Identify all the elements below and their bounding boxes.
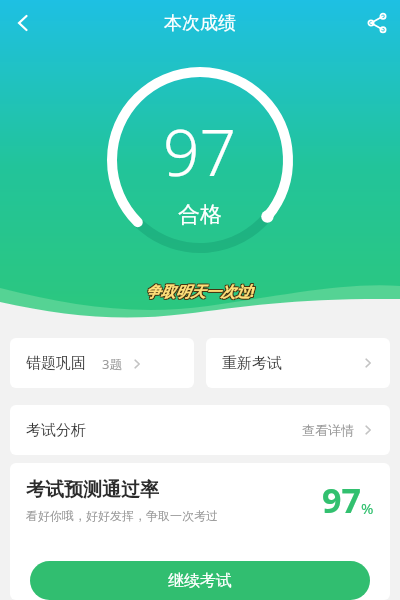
staticText: 考试分析 [26,421,86,440]
button[interactable]: 重新考试 [206,338,390,388]
staticText: 争取明天一次过! [146,282,256,302]
staticText: 97 [322,477,361,523]
staticText: % [361,498,374,518]
staticText: 合格 [178,201,222,229]
staticText: 争取明天一次过! [146,281,256,301]
staticText: 考试预测通过率 [26,478,159,502]
staticText: 看好你哦，好好发挥，争取一次考过 [26,508,218,523]
button[interactable]: Back [0,0,46,46]
staticText: 查看详情 [302,422,354,438]
staticText: 97 [163,108,237,195]
staticText: 争取明天一次过! [144,281,254,301]
staticText: 3题 [102,355,123,373]
staticText: 争取明天一次过! [145,280,255,300]
staticText: 继续考试 [168,571,232,591]
staticText: 争取明天一次过! [145,281,255,301]
button[interactable]: 继续考试 [30,561,370,600]
staticText: 争取明天一次过! [146,280,256,300]
button[interactable]: Share [354,0,400,46]
staticText: 重新考试 [222,354,282,373]
staticText: 争取明天一次过! [144,282,254,302]
staticText: 本次成绩 [164,12,236,35]
button[interactable]: 错题巩固 [10,338,194,388]
staticText: 错题巩固 [26,354,86,373]
staticText: 争取明天一次过! [144,280,254,300]
staticText: 争取明天一次过! [145,282,255,302]
button[interactable]: 考试分析 [10,405,390,455]
